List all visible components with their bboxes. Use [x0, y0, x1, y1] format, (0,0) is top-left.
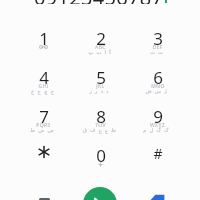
button[interactable]: [15, 147, 72, 186]
staticText: WXYZ: [150, 122, 165, 129]
staticText: TUV: [95, 122, 106, 129]
staticText: JKL: [96, 83, 105, 90]
staticText: ظ ع غ ف ق: [83, 127, 117, 134]
staticText: 2: [96, 27, 106, 50]
staticText: DEF: [152, 44, 163, 51]
button[interactable]: Hide keypad: [35, 194, 54, 200]
staticText: GHI: [38, 83, 49, 90]
button[interactable]: 3: [129, 30, 186, 69]
button[interactable]: 4: [15, 69, 72, 108]
staticText: 7: [39, 105, 49, 128]
staticText: ژ س ش: [145, 88, 168, 95]
button[interactable]: 5: [72, 69, 129, 108]
button[interactable]: 7: [15, 108, 72, 147]
button[interactable]: 0: [72, 147, 129, 186]
staticText: #: [153, 144, 163, 163]
staticText: ت ث: [150, 49, 164, 56]
staticText: آ ا ب پ: [88, 49, 112, 56]
staticText: 8: [96, 105, 106, 128]
button[interactable]: 9: [129, 108, 186, 147]
staticText: PQRS: [36, 122, 51, 129]
staticText: 6: [153, 66, 163, 89]
staticText: 3: [153, 27, 163, 50]
staticText: 5: [96, 66, 106, 89]
staticText: MNO: [151, 83, 165, 90]
staticText: 0: [96, 144, 106, 167]
staticText: ج چ ح خ: [31, 88, 55, 95]
staticText: 9: [153, 105, 163, 128]
staticText: ک گ ل م: [143, 127, 170, 134]
button[interactable]: 2: [72, 30, 129, 69]
button[interactable]: 8: [72, 108, 129, 147]
button[interactable]: Backspace: [148, 190, 167, 200]
button[interactable]: Call: [83, 187, 117, 200]
button[interactable]: 6: [129, 69, 186, 108]
button[interactable]: 1: [15, 30, 72, 69]
staticText: ABC: [95, 44, 106, 51]
staticText: 09123456787: [34, 0, 164, 4]
staticText: د ذ ر ز: [89, 88, 110, 95]
staticText: ص ض ط: [30, 127, 55, 134]
button[interactable]: #: [129, 147, 186, 186]
staticText: 1: [39, 27, 49, 50]
staticText: 4: [39, 66, 49, 89]
